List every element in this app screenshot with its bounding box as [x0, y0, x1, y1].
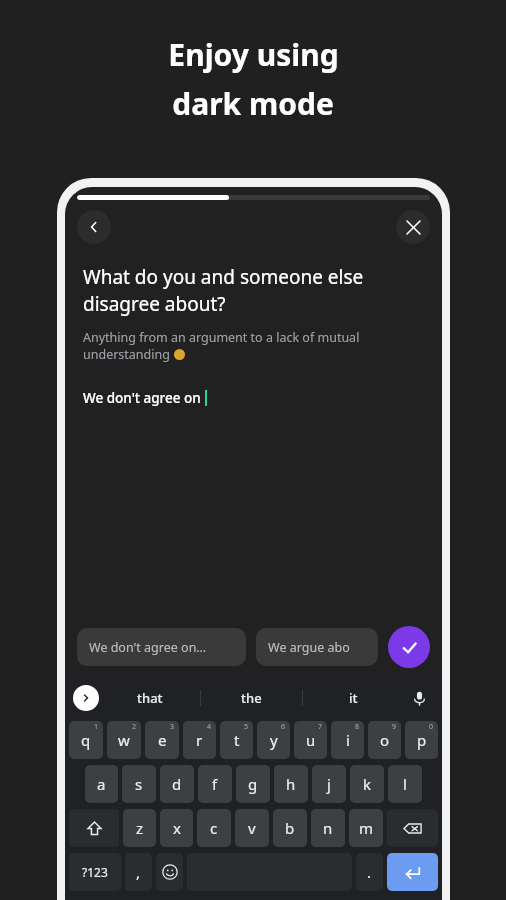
- button[interactable]: j: [312, 765, 346, 803]
- staticText: understanding: [83, 346, 174, 363]
- staticText: What do you and someone else disagree ab…: [83, 264, 364, 317]
- staticText: o: [380, 730, 390, 750]
- staticText: k: [363, 774, 372, 794]
- button[interactable]: Submit: [388, 626, 430, 668]
- button[interactable]: y: [257, 721, 290, 759]
- button[interactable]: g: [236, 765, 270, 803]
- staticText: r: [196, 730, 203, 750]
- staticText: 4: [207, 722, 212, 732]
- button[interactable]: t: [220, 721, 253, 759]
- button[interactable]: i: [331, 721, 364, 759]
- staticText: v: [248, 818, 256, 838]
- staticText: x: [173, 818, 181, 838]
- button[interactable]: c: [197, 809, 231, 847]
- button[interactable]: d: [160, 765, 194, 803]
- staticText: b: [285, 818, 295, 838]
- staticText: w: [118, 730, 130, 750]
- button[interactable]: Emoji: [156, 853, 183, 891]
- staticText: p: [417, 730, 427, 750]
- button[interactable]: m: [349, 809, 383, 847]
- button[interactable]: u: [294, 721, 327, 759]
- staticText: that: [137, 689, 163, 707]
- button[interactable]: r: [183, 721, 216, 759]
- staticText: n: [323, 818, 333, 838]
- button[interactable]: We don't agree on…: [77, 628, 246, 666]
- button[interactable]: the: [201, 678, 302, 718]
- staticText: 3: [170, 722, 175, 732]
- button[interactable]: a: [85, 765, 118, 803]
- staticText: l: [403, 774, 407, 794]
- button[interactable]: x: [160, 809, 193, 847]
- staticText: 1: [94, 722, 99, 732]
- staticText: s: [135, 774, 143, 794]
- button[interactable]: We argue abo: [256, 628, 378, 666]
- button[interactable]: q: [69, 721, 103, 759]
- button[interactable]: Expand suggestions: [73, 685, 99, 711]
- staticText: g: [248, 774, 258, 794]
- staticText: ?123: [82, 864, 108, 880]
- staticText: d: [172, 774, 182, 794]
- button[interactable]: Back: [77, 210, 111, 244]
- staticText: 9: [392, 722, 397, 732]
- button[interactable]: l: [388, 765, 422, 803]
- staticText: m: [359, 818, 374, 838]
- staticText: c: [210, 818, 218, 838]
- button[interactable]: e: [145, 721, 179, 759]
- staticText: i: [346, 730, 350, 750]
- button[interactable]: Backspace: [387, 809, 438, 847]
- staticText: u: [306, 730, 316, 750]
- staticText: Anything from an argument to a lack of m…: [83, 329, 360, 346]
- button[interactable]: v: [235, 809, 269, 847]
- staticText: ,: [136, 862, 141, 882]
- staticText: 0: [429, 722, 434, 732]
- staticText: .: [367, 862, 372, 882]
- button[interactable]: s: [122, 765, 156, 803]
- staticText: j: [327, 774, 331, 794]
- staticText: h: [286, 774, 296, 794]
- staticText: Enjoy using: [168, 34, 339, 75]
- button[interactable]: h: [274, 765, 308, 803]
- button[interactable]: o: [368, 721, 401, 759]
- staticText: a: [97, 774, 106, 794]
- button[interactable]: f: [198, 765, 232, 803]
- staticText: z: [136, 818, 144, 838]
- staticText: We argue abo: [268, 639, 350, 656]
- staticText: We don't agree on: [83, 389, 201, 407]
- button[interactable]: .: [356, 853, 383, 891]
- staticText: 2: [132, 722, 137, 732]
- staticText: it: [349, 689, 358, 707]
- button[interactable]: n: [311, 809, 345, 847]
- button[interactable]: b: [273, 809, 307, 847]
- staticText: q: [81, 730, 91, 750]
- button[interactable]: Enter: [387, 853, 438, 891]
- staticText: t: [234, 730, 240, 750]
- staticText: 6: [281, 722, 286, 732]
- staticText: e: [158, 730, 167, 750]
- button[interactable]: p: [405, 721, 438, 759]
- button[interactable]: it: [303, 678, 404, 718]
- staticText: We don't agree on…: [89, 639, 207, 656]
- button[interactable]: Close: [396, 210, 430, 244]
- button[interactable]: Shift: [69, 809, 119, 847]
- button[interactable]: k: [350, 765, 384, 803]
- staticText: 8: [355, 722, 360, 732]
- button[interactable]: ,: [125, 853, 152, 891]
- staticText: 5: [244, 722, 249, 732]
- button[interactable]: that: [99, 678, 200, 718]
- staticText: the: [241, 689, 262, 707]
- button[interactable]: Voice input: [404, 678, 434, 718]
- button[interactable]: ?123: [69, 853, 121, 891]
- button[interactable]: z: [123, 809, 156, 847]
- staticText: 7: [318, 722, 323, 732]
- staticText: y: [270, 730, 278, 750]
- staticText: dark mode: [172, 83, 334, 124]
- staticText: f: [212, 774, 218, 794]
- button[interactable]: w: [107, 721, 141, 759]
